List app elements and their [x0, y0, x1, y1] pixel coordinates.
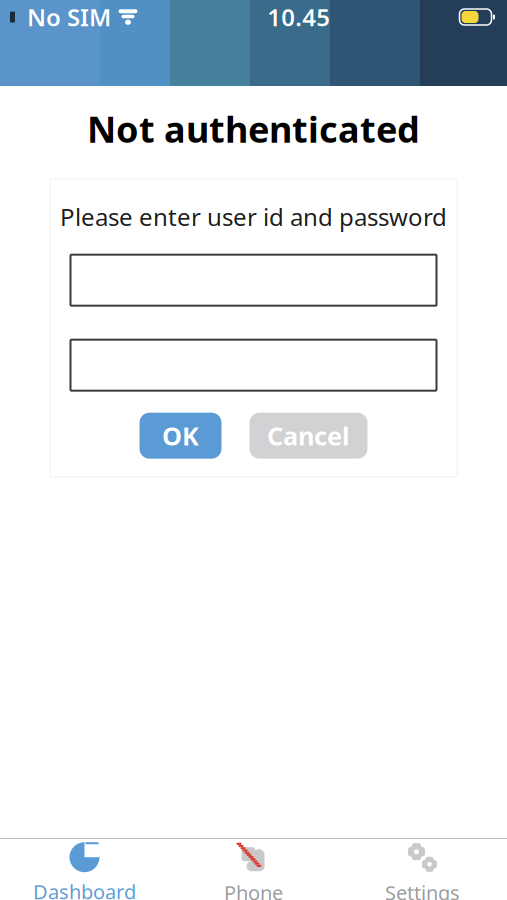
button[interactable]: Phone: [169, 833, 338, 900]
staticText: Not authenticated: [87, 105, 420, 153]
staticText: 10.45: [267, 1, 330, 33]
button[interactable]: Settings: [338, 833, 507, 900]
staticText: Phone: [224, 879, 283, 900]
staticText: Cancel: [267, 419, 350, 452]
staticText: Settings: [385, 879, 460, 900]
button[interactable]: Dashboard: [0, 834, 169, 900]
staticText: OK: [162, 419, 199, 452]
staticText: Please enter user id and password: [60, 201, 447, 233]
button[interactable]: Cancel: [249, 413, 367, 459]
staticText: Dashboard: [33, 878, 136, 900]
button[interactable]: OK: [139, 413, 221, 459]
staticText: No SIM: [27, 1, 111, 33]
